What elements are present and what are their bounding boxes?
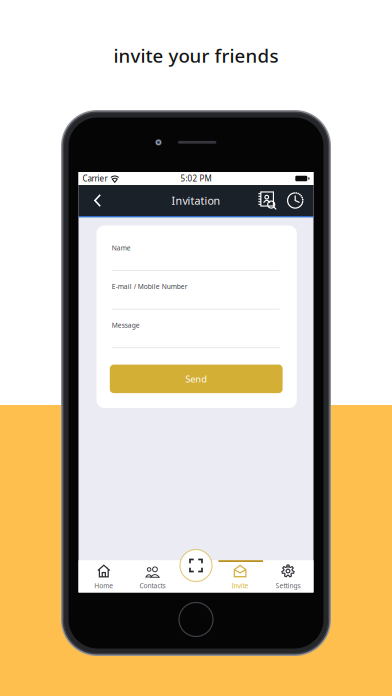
button[interactable]: Invite bbox=[218, 560, 262, 592]
button[interactable]: Contacts bbox=[130, 560, 174, 592]
button[interactable]: Search contacts bbox=[255, 185, 279, 216]
button[interactable]: Settings bbox=[266, 560, 310, 592]
button[interactable]: Invitation history bbox=[285, 185, 305, 216]
staticText: Send bbox=[185, 373, 207, 385]
staticText: 5:02 PM bbox=[180, 173, 211, 184]
staticText: Settings bbox=[275, 581, 300, 590]
staticText: Contacts bbox=[139, 581, 165, 590]
staticText: invite your friends bbox=[113, 43, 278, 68]
staticText: Invite bbox=[232, 581, 249, 590]
staticText: Invitation bbox=[171, 193, 220, 208]
staticText: Message bbox=[112, 321, 140, 330]
button[interactable]: Home bbox=[82, 560, 126, 592]
staticText: E-mail / Mobile Number bbox=[112, 282, 188, 291]
staticText: Home bbox=[94, 581, 113, 590]
staticText: Name bbox=[112, 243, 131, 252]
staticText: Carrier bbox=[82, 173, 107, 184]
button[interactable]: Send bbox=[110, 365, 283, 393]
button[interactable]: Back bbox=[84, 185, 110, 216]
